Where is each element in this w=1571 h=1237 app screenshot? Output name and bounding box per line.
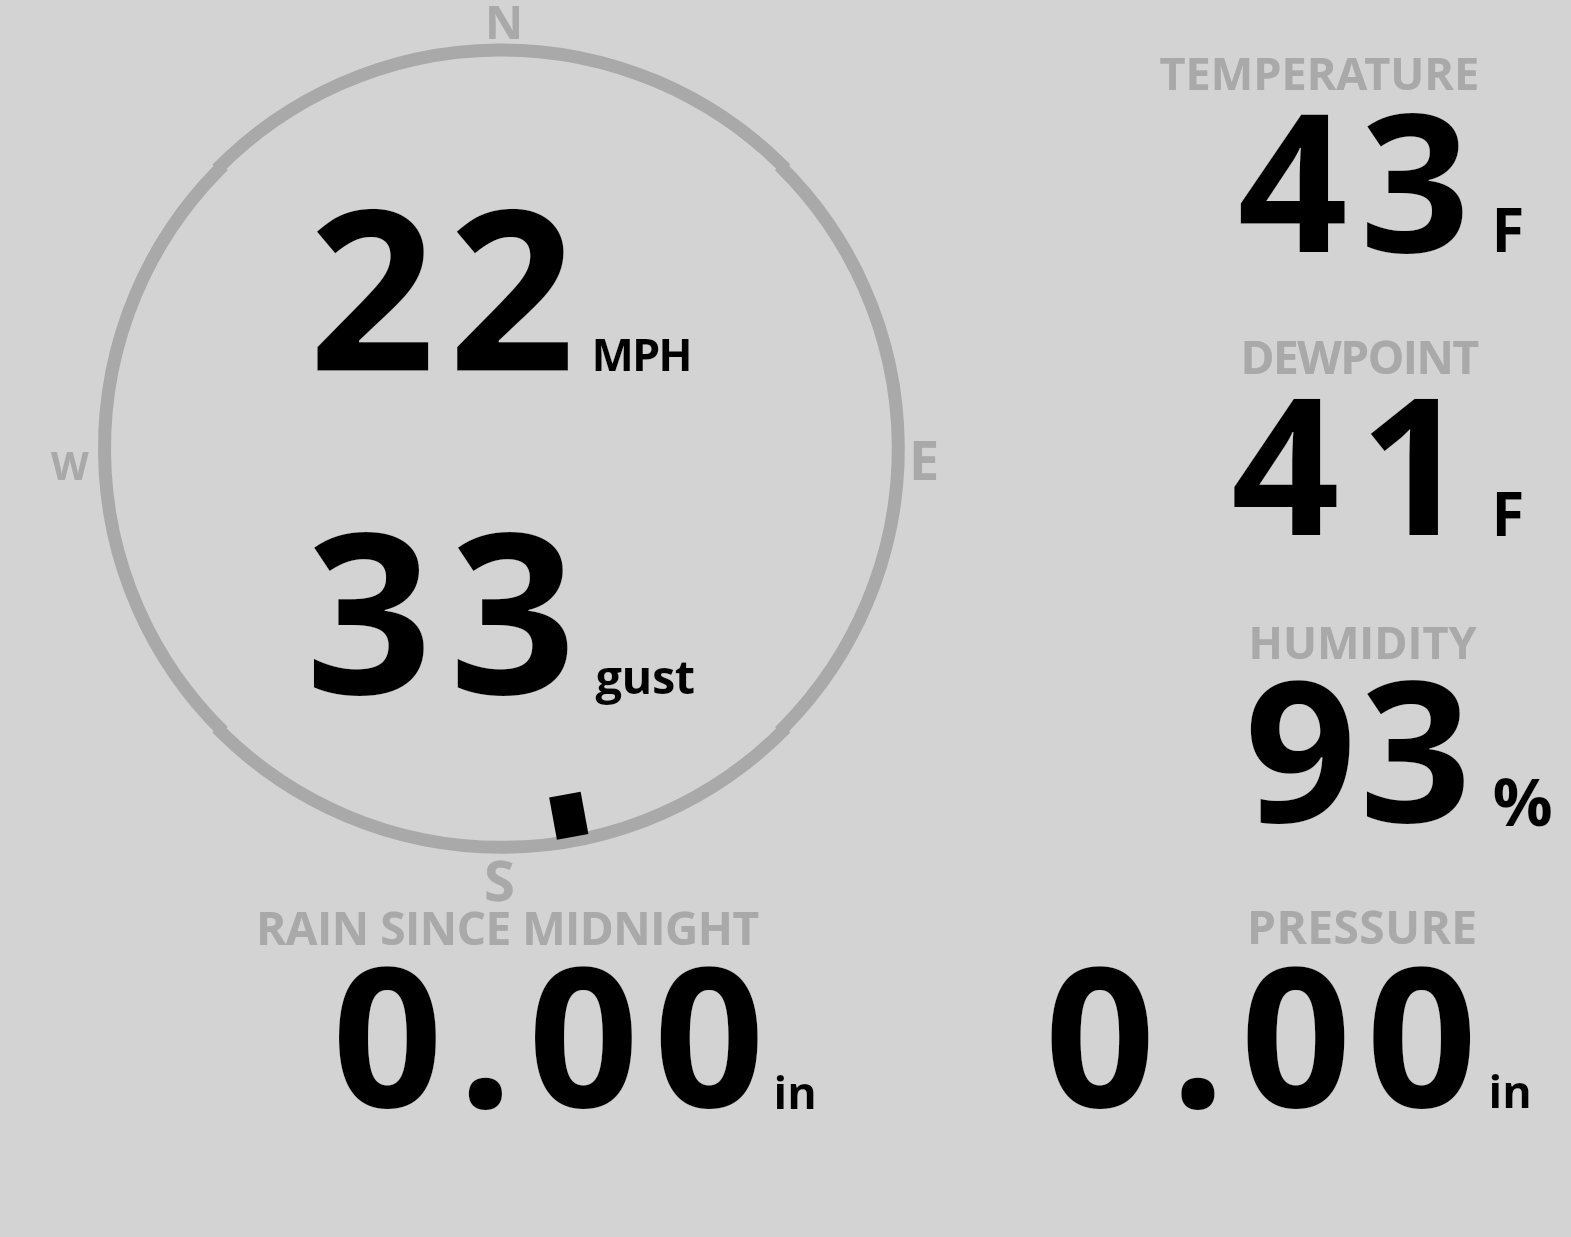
- button[interactable]: Rain since midnight 0.00 in: [250, 895, 810, 1125]
- button[interactable]: Dewpoint 41 F: [1150, 325, 1550, 555]
- button[interactable]: Wind speed 22 MPH, gust 33, direction so…: [82, 30, 918, 866]
- button[interactable]: Pressure 0.00 in: [1000, 895, 1560, 1125]
- button[interactable]: Humidity 93 %: [1150, 610, 1550, 840]
- button[interactable]: Temperature 43 F: [1150, 40, 1550, 270]
